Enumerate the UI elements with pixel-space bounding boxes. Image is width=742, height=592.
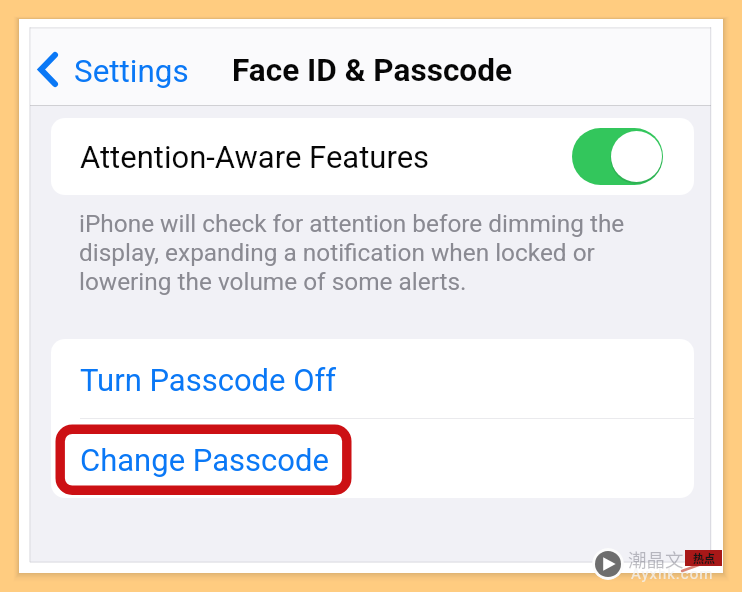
button[interactable]: Turn Passcode Off: [51, 339, 694, 418]
staticText: lowering the volume of some alerts.: [79, 267, 467, 296]
staticText: display, expanding a notification when l…: [79, 238, 595, 267]
staticText: Turn Passcode Off: [80, 362, 337, 398]
staticText: Attention-Aware Features: [80, 139, 430, 175]
staticText: Face ID & Passcode: [232, 52, 513, 89]
button[interactable]: Attention-Aware Features: [51, 118, 694, 195]
staticText: Change Passcode: [80, 442, 329, 478]
staticText: 热点: [693, 550, 715, 566]
button[interactable]: Change Passcode: [51, 419, 694, 498]
staticText: iPhone will check for attention before d…: [79, 209, 625, 238]
button[interactable]: Play video: [592, 548, 624, 580]
staticText: Settings: [74, 53, 189, 90]
other: Back: [38, 52, 58, 87]
staticText: Ayxhk.com: [631, 565, 714, 583]
staticText: 潮晶文: [628, 546, 684, 573]
button[interactable]: Back: [30, 36, 190, 98]
button[interactable]: Attention-Aware Features, on: [572, 128, 663, 185]
